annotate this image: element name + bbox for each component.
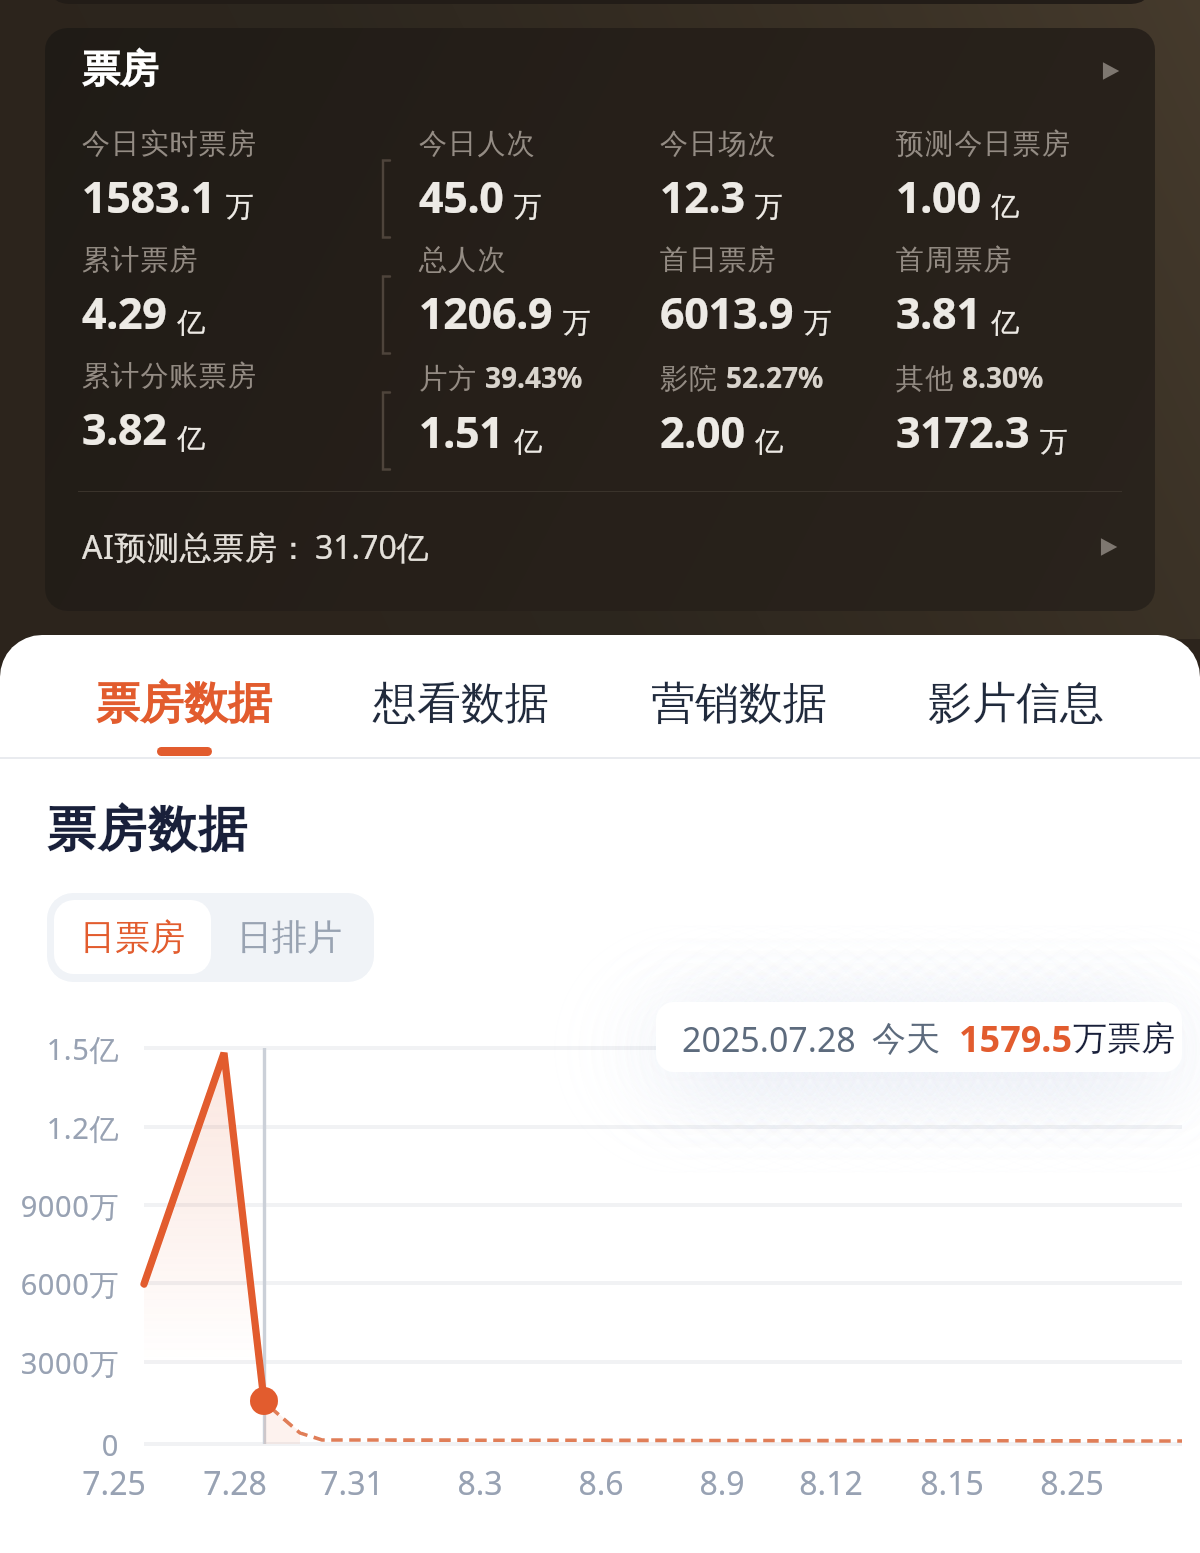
staticText: 万 bbox=[514, 189, 542, 224]
other: Open details bbox=[1097, 536, 1119, 558]
staticText: 预测今日票房 bbox=[896, 126, 1072, 161]
staticText: 39.43% bbox=[485, 358, 583, 396]
staticText: 1.51 bbox=[419, 402, 504, 461]
button[interactable]: 营销数据 bbox=[600, 635, 878, 757]
staticText: 日票房 bbox=[80, 915, 185, 959]
staticText: 2025.07.28 bbox=[682, 1016, 856, 1062]
staticText: 7.31 bbox=[292, 1461, 412, 1505]
staticText: 影院 bbox=[660, 361, 719, 396]
staticText: 万票房 bbox=[1073, 1017, 1175, 1060]
staticText: 1583.1 bbox=[82, 167, 216, 226]
staticText: 想看数据 bbox=[373, 676, 549, 731]
staticText: 亿 bbox=[991, 189, 1019, 224]
staticText: 8.3 bbox=[420, 1461, 540, 1505]
staticText: 31.70亿 bbox=[315, 525, 429, 569]
staticText: 8.6 bbox=[541, 1461, 661, 1505]
staticText: 1.2亿 bbox=[0, 1108, 119, 1148]
staticText: 万 bbox=[226, 189, 254, 224]
staticText: 8.25 bbox=[1012, 1461, 1132, 1505]
staticText: 营销数据 bbox=[651, 676, 827, 731]
staticText: 万 bbox=[804, 305, 832, 340]
staticText: 45.0 bbox=[419, 167, 504, 226]
staticText: 日排片 bbox=[237, 915, 342, 959]
staticText: 其他 bbox=[896, 361, 955, 396]
staticText: 亿 bbox=[177, 305, 205, 340]
staticText: 首日票房 bbox=[660, 242, 777, 277]
staticText: 片方 bbox=[419, 361, 478, 396]
staticText: 6000万 bbox=[0, 1264, 119, 1304]
button[interactable]: 日排片 bbox=[211, 900, 368, 974]
button[interactable]: 日票房 bbox=[54, 900, 211, 974]
staticText: 12.3 bbox=[660, 167, 745, 226]
button[interactable]: 票房数据 bbox=[45, 635, 323, 757]
button[interactable]: 影片信息 bbox=[877, 635, 1155, 757]
other: Open details bbox=[1099, 60, 1121, 82]
staticText: 8.9 bbox=[662, 1461, 782, 1505]
staticText: 亿 bbox=[177, 421, 205, 456]
staticText: 8.30% bbox=[962, 358, 1044, 396]
staticText: 亿 bbox=[991, 305, 1019, 340]
staticText: 52.27% bbox=[726, 358, 824, 396]
staticText: 6013.9 bbox=[660, 283, 794, 342]
staticText: 3.82 bbox=[82, 399, 167, 458]
staticText: 3.81 bbox=[896, 283, 981, 342]
staticText: 3000万 bbox=[0, 1343, 119, 1383]
staticText: 1.5亿 bbox=[0, 1029, 119, 1069]
staticText: 7.28 bbox=[175, 1461, 295, 1505]
staticText: 票房 bbox=[82, 45, 158, 93]
staticText: 万 bbox=[755, 189, 783, 224]
staticText: 4.29 bbox=[82, 283, 167, 342]
staticText: 今日实时票房 bbox=[82, 126, 258, 161]
staticText: 7.25 bbox=[54, 1461, 174, 1505]
button[interactable]: AI预测总票房： bbox=[82, 487, 1119, 606]
staticText: 9000万 bbox=[0, 1186, 119, 1226]
staticText: 今天 bbox=[872, 1017, 940, 1060]
staticText: 3172.3 bbox=[896, 402, 1030, 461]
staticText: 影片信息 bbox=[928, 676, 1104, 731]
staticText: 万 bbox=[1040, 424, 1068, 459]
staticText: 票房数据 bbox=[47, 799, 249, 861]
staticText: 亿 bbox=[514, 424, 542, 459]
button[interactable]: 票房 bbox=[45, 28, 1155, 611]
staticText: AI预测总票房： bbox=[82, 525, 311, 569]
staticText: 8.15 bbox=[892, 1461, 1012, 1505]
staticText: 累计分账票房 bbox=[82, 358, 258, 393]
staticText: 总人次 bbox=[419, 242, 507, 277]
staticText: 累计票房 bbox=[82, 242, 199, 277]
staticText: 今日人次 bbox=[419, 126, 536, 161]
staticText: 2.00 bbox=[660, 402, 745, 461]
staticText: 首周票房 bbox=[896, 242, 1013, 277]
staticText: 0 bbox=[0, 1425, 119, 1464]
button[interactable]: 2025.07.28 bbox=[656, 1002, 1182, 1072]
staticText: 票房数据 bbox=[96, 676, 272, 731]
staticText: 1579.5 bbox=[959, 1014, 1073, 1063]
staticText: 万 bbox=[563, 305, 591, 340]
staticText: 8.12 bbox=[771, 1461, 891, 1505]
staticText: 1206.9 bbox=[419, 283, 553, 342]
staticText: 亿 bbox=[755, 424, 783, 459]
staticText: 1.00 bbox=[896, 167, 981, 226]
button[interactable]: 想看数据 bbox=[322, 635, 600, 757]
staticText: 今日场次 bbox=[660, 126, 777, 161]
